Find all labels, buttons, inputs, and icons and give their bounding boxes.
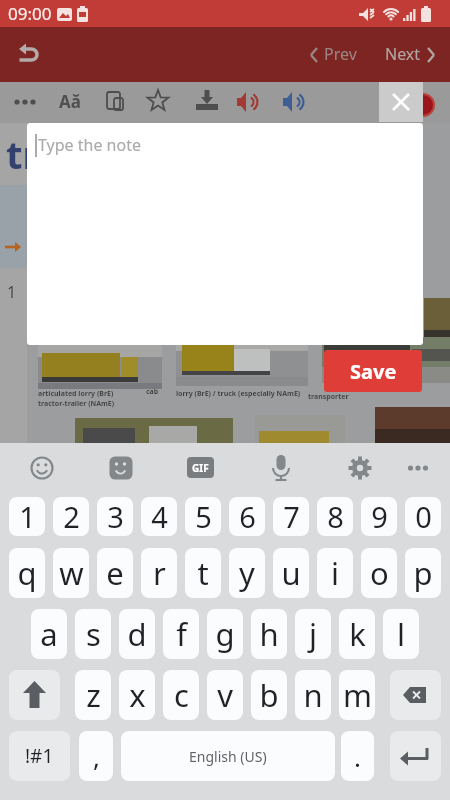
button[interactable]: b (251, 670, 287, 720)
staticText: p (413, 552, 433, 594)
button[interactable] (390, 731, 441, 781)
button[interactable]: o (361, 548, 397, 598)
staticText: b (259, 674, 279, 716)
button[interactable]: y (229, 548, 265, 598)
staticText: tr (6, 128, 40, 180)
staticText: x (129, 674, 146, 716)
button[interactable]: a (31, 609, 67, 659)
button[interactable]: !#1 (9, 731, 70, 781)
staticText: tractor-trailer (NAmE) (38, 399, 115, 409)
button[interactable]: m (339, 670, 375, 720)
staticText: k (349, 613, 366, 655)
button[interactable]: u (273, 548, 309, 598)
button[interactable]: Next (383, 39, 443, 71)
button[interactable]: 2 (53, 497, 89, 536)
staticText: 7 (283, 497, 300, 536)
button[interactable] (390, 670, 441, 720)
button[interactable]: p (405, 548, 441, 598)
button[interactable]: 7 (273, 497, 309, 536)
button[interactable]: x (119, 670, 155, 720)
staticText: 0 (415, 497, 432, 536)
staticText: articulated lorry (BrE) (38, 389, 114, 399)
staticText: , (93, 739, 100, 774)
staticText: g (215, 613, 235, 655)
button[interactable]: g (207, 609, 243, 659)
staticText: Next (385, 43, 421, 65)
button[interactable]: w (53, 548, 89, 598)
staticText: transporter (308, 392, 349, 402)
staticText: i (331, 552, 339, 594)
button[interactable]: 3 (97, 497, 133, 536)
staticText: !#1 (25, 743, 54, 769)
button[interactable]: 6 (229, 497, 265, 536)
button[interactable] (379, 82, 423, 122)
button[interactable]: t (185, 548, 221, 598)
button[interactable]: j (295, 609, 331, 659)
staticText: e (106, 552, 124, 594)
button[interactable]: English (US) (121, 731, 335, 781)
button[interactable]: Save (324, 350, 422, 392)
button[interactable]: i (317, 548, 353, 598)
button[interactable]: d (119, 609, 155, 659)
button[interactable]: 9 (361, 497, 397, 536)
staticText: cab (146, 387, 159, 397)
staticText: c (174, 674, 189, 716)
staticText: f (176, 613, 187, 655)
staticText: 1 (7, 281, 17, 303)
staticText: z (86, 674, 101, 716)
staticText: j (309, 613, 317, 655)
staticText: o (370, 552, 389, 594)
staticText: English (US) (189, 747, 267, 766)
staticText: 2 (63, 497, 80, 536)
staticText: r (153, 552, 166, 594)
button[interactable]: f (163, 609, 199, 659)
staticText: h (259, 613, 279, 655)
staticText: y (239, 552, 255, 594)
button[interactable]: GIF (187, 457, 214, 478)
button[interactable]: h (251, 609, 287, 659)
staticText: GIF (192, 461, 209, 475)
staticText: 8 (327, 497, 344, 536)
staticText: . (354, 739, 361, 774)
button[interactable]: s (75, 609, 111, 659)
staticText: s (86, 613, 101, 655)
staticText: w (59, 552, 84, 594)
staticText: v (217, 674, 233, 716)
staticText: d (127, 613, 147, 655)
button[interactable]: v (207, 670, 243, 720)
button[interactable]: z (75, 670, 111, 720)
staticText: 4 (151, 497, 168, 536)
staticText: Type the note (38, 134, 141, 156)
button[interactable]: . (341, 731, 374, 781)
button[interactable]: 8 (317, 497, 353, 536)
staticText: q (17, 552, 37, 594)
staticText: 3 (107, 497, 124, 536)
staticText: t (197, 552, 209, 594)
button[interactable]: Prev (308, 39, 378, 71)
button[interactable] (8, 35, 52, 75)
button[interactable]: k (339, 609, 375, 659)
staticText: u (281, 552, 301, 594)
staticText: Aă (59, 90, 81, 113)
button[interactable]: n (295, 670, 331, 720)
button[interactable]: l (383, 609, 419, 659)
button[interactable]: 5 (185, 497, 221, 536)
button[interactable]: 0 (405, 497, 441, 536)
button[interactable]: 4 (141, 497, 177, 536)
button[interactable]: q (9, 548, 45, 598)
button[interactable]: c (163, 670, 199, 720)
staticText: Save (350, 358, 397, 385)
staticText: n (303, 674, 323, 716)
staticText: m (343, 674, 372, 716)
staticText: 1 (19, 497, 36, 536)
staticText: l (397, 613, 405, 655)
button[interactable]: e (97, 548, 133, 598)
staticText: 5 (195, 497, 212, 536)
button[interactable]: r (141, 548, 177, 598)
button[interactable]: Type the note (27, 123, 423, 345)
staticText: Prev (324, 43, 357, 65)
button[interactable]: 1 (9, 497, 45, 536)
button[interactable]: , (79, 731, 113, 781)
button[interactable] (9, 670, 60, 720)
staticText: 9 (371, 497, 388, 536)
